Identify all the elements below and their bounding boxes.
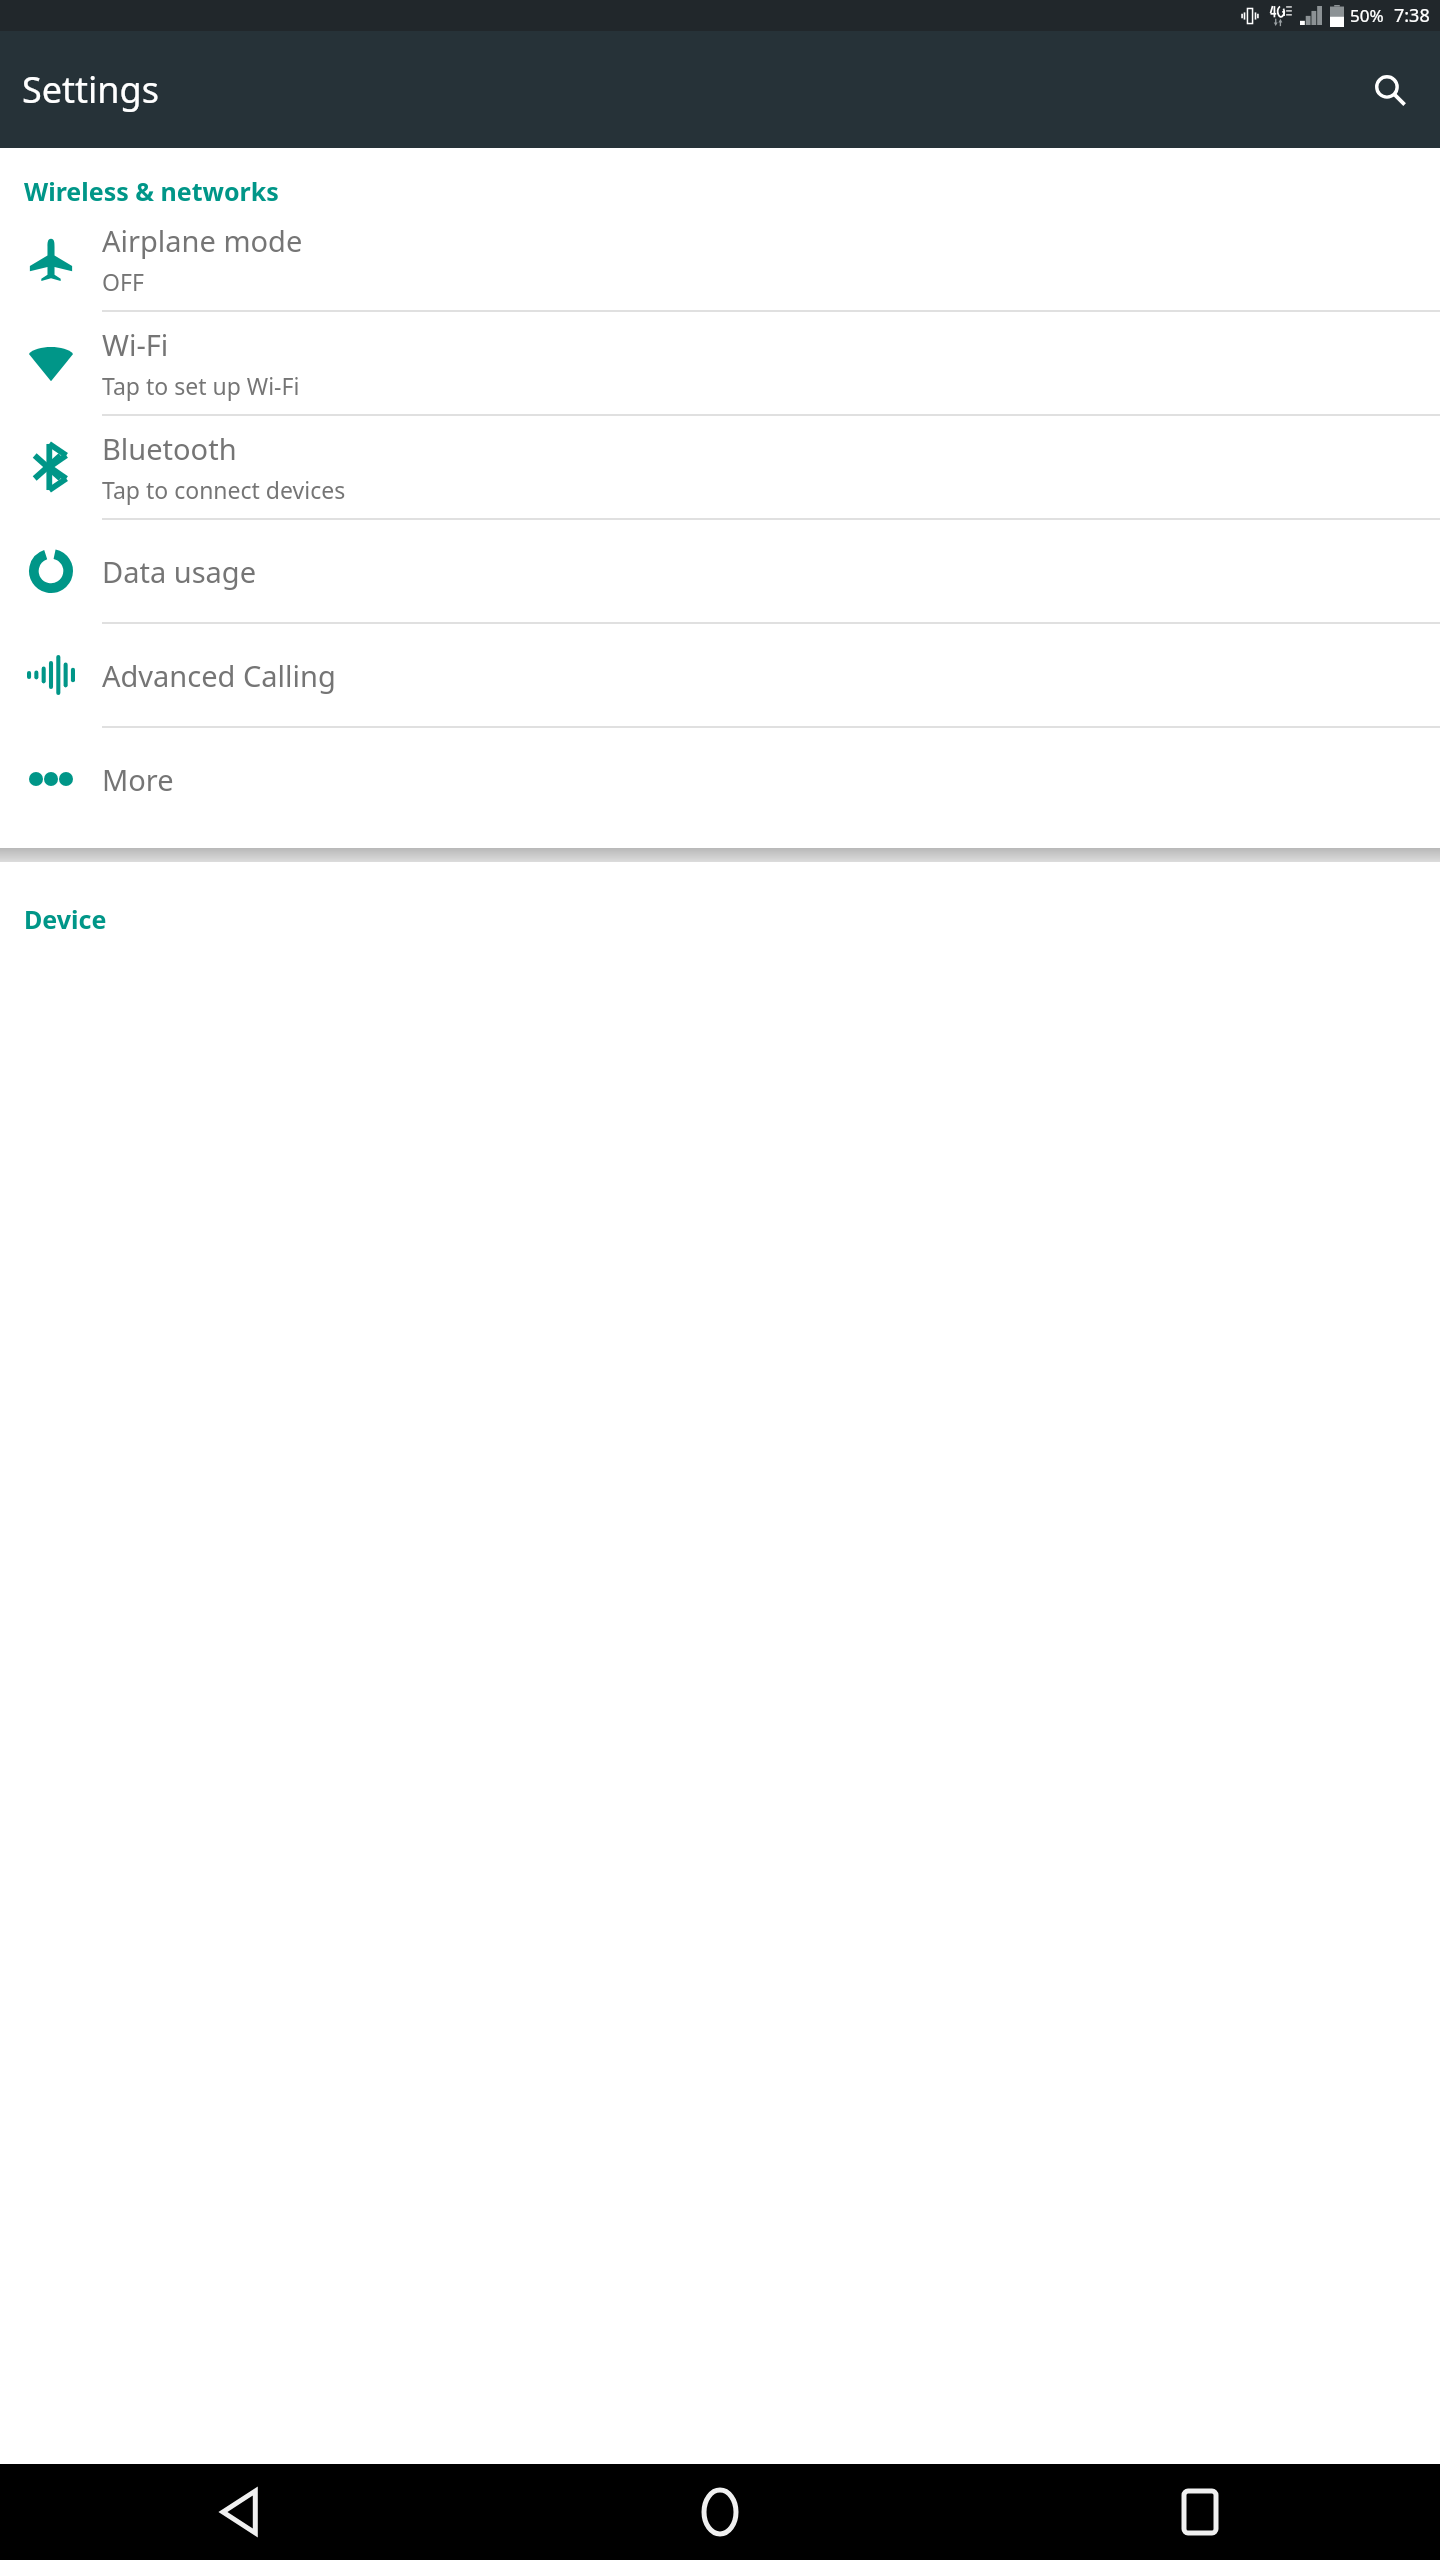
staticText: Data usage	[102, 552, 256, 591]
button[interactable]: Home	[480, 2464, 960, 2560]
staticText: Advanced Calling	[102, 656, 336, 695]
button[interactable]: Bluetooth	[0, 416, 1440, 518]
staticText: 7:38	[1394, 3, 1430, 28]
button[interactable]: Wi-Fi	[0, 312, 1440, 414]
staticText: Tap to connect devices	[102, 474, 346, 505]
staticText: OFF	[102, 266, 144, 297]
staticText: 50%	[1350, 4, 1384, 27]
staticText: Wi-Fi	[102, 325, 169, 364]
staticText: Device	[24, 902, 107, 936]
staticText: Bluetooth	[102, 429, 237, 468]
button[interactable]: Airplane mode	[0, 208, 1440, 310]
staticText: Wireless & networks	[24, 174, 279, 208]
staticText: Airplane mode	[102, 221, 303, 260]
staticText: Settings	[22, 65, 159, 114]
button[interactable]: More	[0, 728, 1440, 830]
button[interactable]: Advanced Calling	[0, 624, 1440, 726]
button[interactable]: Data usage	[0, 520, 1440, 622]
button[interactable]: Search	[1362, 62, 1418, 118]
staticText: Tap to set up Wi-Fi	[102, 370, 300, 401]
staticText: More	[102, 760, 174, 799]
button[interactable]: Back	[0, 2464, 480, 2560]
button[interactable]: Recent apps	[960, 2464, 1440, 2560]
